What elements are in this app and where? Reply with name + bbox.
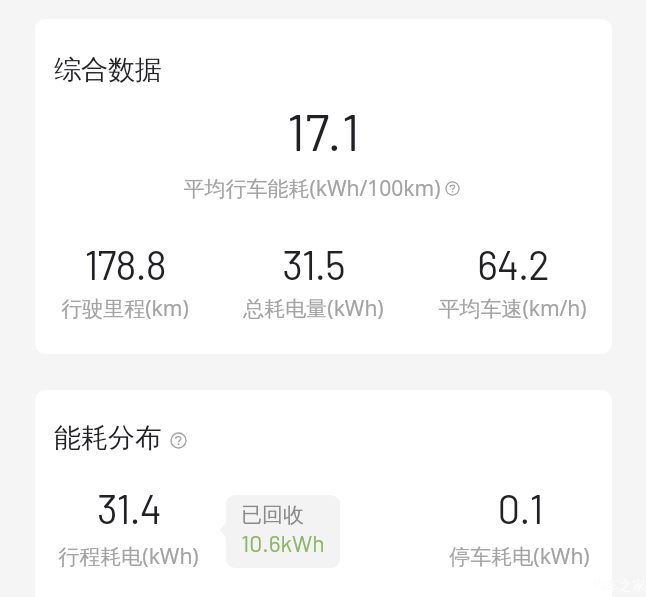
staticText: 31.4 bbox=[97, 484, 161, 532]
staticText: 能耗分布 bbox=[54, 421, 162, 455]
staticText: 平均车速(km/h) bbox=[438, 294, 587, 323]
staticText: 汽车之家 bbox=[593, 577, 645, 593]
button[interactable]: 31.5 bbox=[243, 240, 384, 323]
button[interactable]: 0.1 bbox=[449, 484, 590, 571]
button[interactable]: More information bbox=[170, 432, 187, 449]
staticText: 平均行车能耗(kWh/100km) bbox=[183, 174, 441, 203]
button[interactable]: 已回收 bbox=[226, 495, 340, 568]
staticText: 总耗电量(kWh) bbox=[243, 294, 384, 323]
staticText: 31.5 bbox=[282, 240, 345, 288]
button[interactable]: 能耗分布 bbox=[54, 421, 187, 455]
staticText: 停车耗电(kWh) bbox=[449, 542, 590, 571]
staticText: 178.8 bbox=[84, 240, 166, 288]
button[interactable]: 64.2 bbox=[438, 240, 587, 323]
button[interactable]: 178.8 bbox=[61, 240, 189, 323]
staticText: 17.1 bbox=[287, 100, 360, 161]
button[interactable]: More information bbox=[445, 181, 460, 196]
staticText: 0.1 bbox=[497, 484, 543, 532]
staticText: 行程耗电(kWh) bbox=[58, 542, 199, 571]
staticText: 64.2 bbox=[477, 240, 549, 288]
button[interactable]: 综合数据 bbox=[54, 53, 162, 87]
button[interactable]: 31.4 bbox=[58, 484, 199, 571]
staticText: 10.6kWh bbox=[241, 529, 325, 557]
staticText: 已回收 bbox=[241, 502, 304, 528]
staticText: 行驶里程(km) bbox=[61, 294, 189, 323]
